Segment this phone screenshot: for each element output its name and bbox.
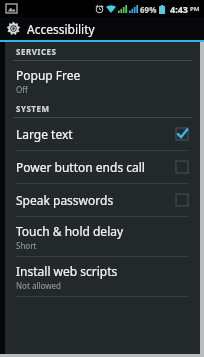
staticText: Power button ends call — [16, 159, 176, 175]
staticText: 69% — [140, 4, 157, 15]
staticText: Large text — [16, 126, 176, 142]
staticText: Popup Free — [16, 67, 81, 83]
staticText: Install web scripts — [16, 263, 118, 279]
button[interactable]: Touch & hold delay — [5, 217, 200, 256]
staticText: Speak passwords — [16, 192, 176, 208]
staticText: SYSTEM — [16, 103, 50, 114]
staticText: Touch & hold delay — [16, 223, 124, 239]
button[interactable]: Settings — [0, 17, 204, 40]
staticText: Accessibility — [27, 21, 95, 37]
button[interactable]: Speak passwords — [5, 184, 200, 216]
staticText: PM — [190, 5, 200, 13]
staticText: Not allowed — [16, 280, 61, 291]
button[interactable]: Popup Free — [5, 61, 200, 100]
staticText: Short — [16, 240, 37, 251]
staticText: Off — [16, 84, 28, 95]
button[interactable]: Large text — [5, 118, 200, 150]
other: Settings — [5, 20, 22, 37]
staticText: SERVICES — [16, 46, 57, 57]
button[interactable]: Power button ends call — [5, 151, 200, 183]
staticText: 4:43 — [170, 3, 188, 15]
button[interactable]: Install web scripts — [5, 257, 200, 296]
